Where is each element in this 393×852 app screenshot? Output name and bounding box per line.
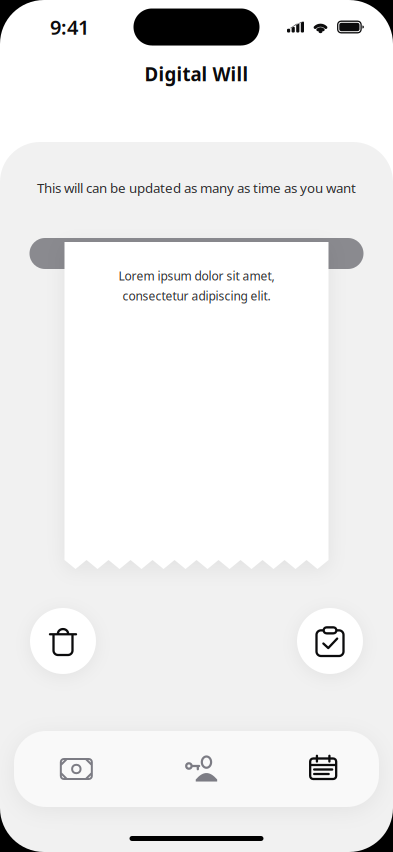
button[interactable]: Beneficiaries bbox=[136, 731, 257, 807]
button[interactable]: Will bbox=[257, 731, 379, 807]
staticText: This will can be updated as many as time… bbox=[37, 179, 356, 197]
button[interactable]: Assets bbox=[14, 731, 136, 807]
staticText: Lorem ipsum dolor sit amet, bbox=[118, 268, 274, 284]
button[interactable]: Confirm bbox=[297, 608, 363, 674]
staticText: 9:41 bbox=[50, 14, 89, 40]
staticText: consectetur adipiscing elit. bbox=[122, 288, 270, 304]
button[interactable]: Delete bbox=[30, 608, 96, 674]
staticText: Digital Will bbox=[144, 62, 248, 86]
